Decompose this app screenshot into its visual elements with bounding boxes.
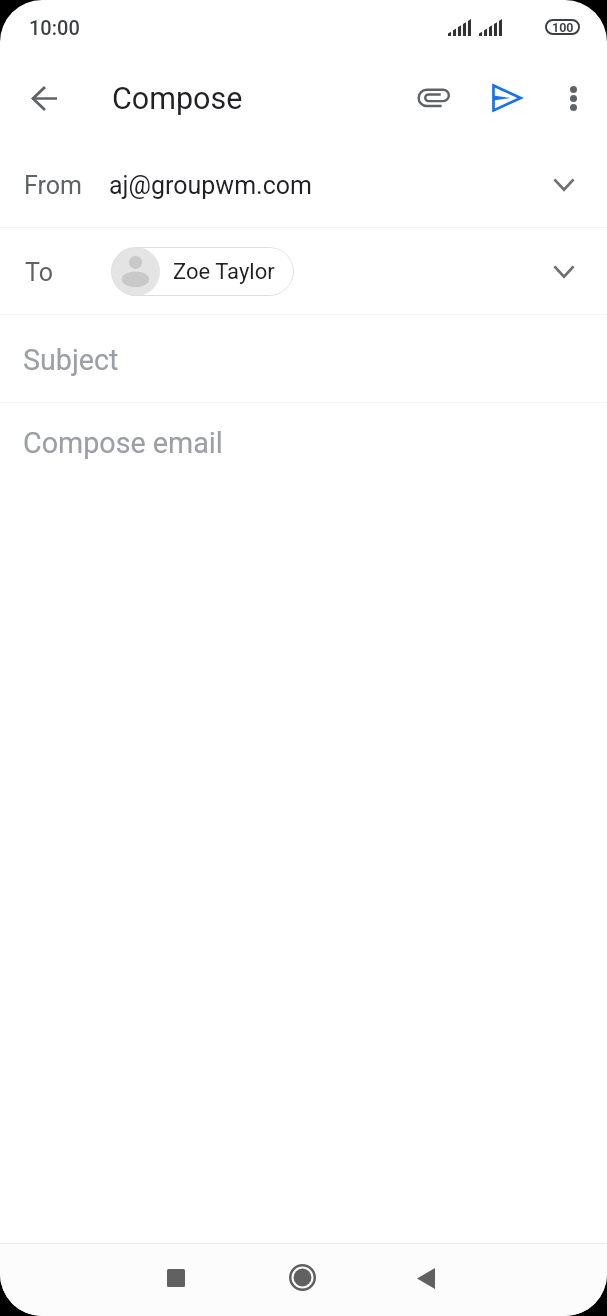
button[interactable]: Expand from field [542,163,586,207]
staticText: Subject [23,343,119,377]
button[interactable]: Subject [0,315,607,402]
button[interactable]: Recent apps [136,1244,216,1316]
button[interactable]: Home [262,1244,342,1316]
staticText: 100 [552,20,574,35]
button[interactable]: More options [547,72,599,124]
staticText: aj@groupwm.com [109,171,312,200]
staticText: Zoe Taylor [173,259,275,285]
button[interactable]: Zoe Taylor [111,247,294,296]
staticText: Compose [112,81,243,117]
staticText: Compose email [23,426,223,460]
staticText: From [24,171,82,200]
button[interactable]: From [0,141,607,227]
button[interactable]: Back [386,1244,466,1316]
button[interactable]: Send [481,72,533,124]
button[interactable]: Attach file [408,72,460,124]
button[interactable]: Expand recipients [542,250,586,294]
staticText: To [25,258,53,287]
button[interactable]: Compose email [0,403,607,492]
button[interactable]: Back [20,74,68,122]
button[interactable]: To [0,228,607,314]
staticText: 10:00 [29,16,80,39]
